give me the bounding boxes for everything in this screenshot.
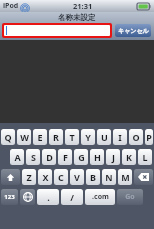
staticText: E xyxy=(37,131,43,143)
button[interactable]: A xyxy=(10,149,24,165)
staticText: J xyxy=(112,151,115,163)
staticText: R xyxy=(53,131,59,143)
button[interactable]: O xyxy=(129,129,143,145)
staticText: 名称未設定 xyxy=(58,13,96,22)
staticText: I xyxy=(118,131,122,143)
staticText: N xyxy=(105,171,113,183)
staticText: Z xyxy=(26,171,32,183)
staticText: M xyxy=(121,171,130,183)
staticText: Y xyxy=(85,131,91,143)
button[interactable]: Shift xyxy=(1,169,20,185)
button[interactable]: キャンセル xyxy=(115,24,151,37)
button[interactable]: 123 xyxy=(1,189,18,205)
button[interactable]: .com xyxy=(85,189,115,205)
button[interactable] xyxy=(4,25,110,36)
staticText: / xyxy=(70,191,74,203)
button[interactable]: Z xyxy=(22,169,36,185)
staticText: Go xyxy=(125,192,135,202)
staticText: K xyxy=(126,151,132,163)
button[interactable]: L xyxy=(138,149,152,165)
staticText: O xyxy=(132,131,140,143)
button[interactable]: M xyxy=(118,169,132,185)
staticText: C xyxy=(58,171,64,183)
button[interactable]: S xyxy=(26,149,40,165)
staticText: H xyxy=(94,151,101,163)
button[interactable]: K xyxy=(122,149,136,165)
button[interactable]: D xyxy=(42,149,56,165)
staticText: Q xyxy=(4,131,12,143)
button[interactable]: Y xyxy=(81,129,95,145)
button[interactable]: N xyxy=(102,169,116,185)
button[interactable]: Q xyxy=(1,129,15,145)
staticText: B xyxy=(90,171,96,183)
staticText: T xyxy=(69,131,75,143)
button[interactable]: R xyxy=(49,129,63,145)
staticText: キャンセル xyxy=(118,27,149,35)
button[interactable]: Change keyboard xyxy=(20,189,35,205)
staticText: .com xyxy=(92,192,109,202)
button[interactable]: H xyxy=(90,149,104,165)
button[interactable]: G xyxy=(74,149,88,165)
button[interactable]: U xyxy=(97,129,111,145)
staticText: U xyxy=(101,131,108,143)
button[interactable]: / xyxy=(61,189,83,205)
staticText: G xyxy=(78,151,85,163)
staticText: 123 xyxy=(4,193,15,201)
staticText: P xyxy=(146,131,152,143)
staticText: . xyxy=(47,191,50,203)
staticText: D xyxy=(46,151,53,163)
button[interactable]: C xyxy=(54,169,68,185)
staticText: S xyxy=(31,151,36,163)
button[interactable]: I xyxy=(113,129,127,145)
button[interactable]: P xyxy=(145,129,153,145)
button[interactable]: B xyxy=(86,169,100,185)
button[interactable]: V xyxy=(70,169,84,185)
staticText: A xyxy=(14,151,21,163)
staticText: F xyxy=(63,151,68,163)
staticText: X xyxy=(42,171,49,183)
button[interactable]: X xyxy=(38,169,52,185)
staticText: W xyxy=(20,131,29,143)
staticText: V xyxy=(74,171,80,183)
button[interactable]: T xyxy=(65,129,79,145)
button[interactable]: F xyxy=(58,149,72,165)
button[interactable]: W xyxy=(17,129,31,145)
button[interactable]: E xyxy=(33,129,47,145)
button[interactable]: Go xyxy=(117,189,143,205)
staticText: 21:31 xyxy=(73,1,93,11)
button[interactable]: . xyxy=(37,189,59,205)
staticText: iPod xyxy=(3,1,19,11)
button[interactable]: J xyxy=(106,149,120,165)
staticText: L xyxy=(142,151,148,163)
button[interactable]: Delete xyxy=(134,169,153,185)
